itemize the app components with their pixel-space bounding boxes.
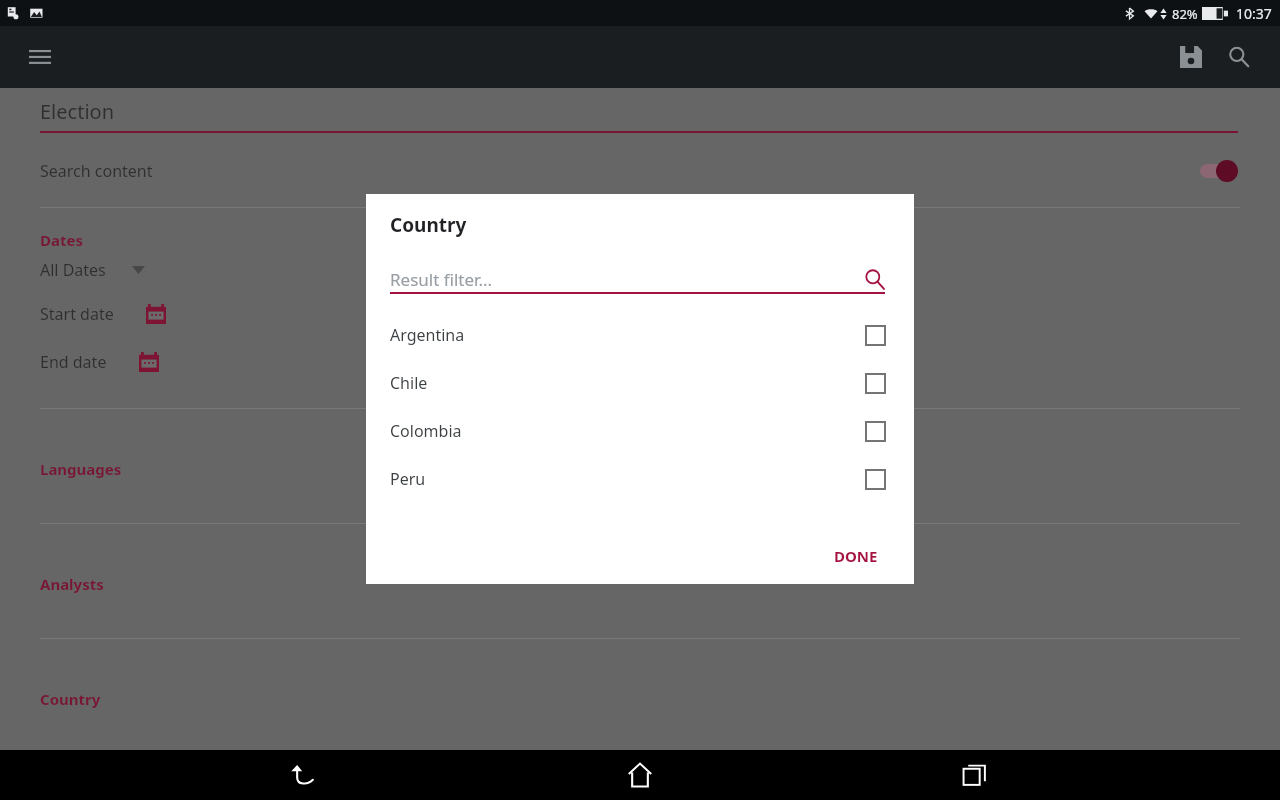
- staticText: Election: [40, 98, 114, 125]
- staticText: All Dates: [40, 259, 106, 281]
- button[interactable]: Save: [1168, 34, 1214, 80]
- button[interactable]: End date: [0, 338, 1280, 386]
- staticText: Start date: [40, 303, 114, 325]
- button[interactable]: Open navigation drawer: [18, 35, 62, 79]
- button[interactable]: Chile: [366, 359, 914, 407]
- staticText: Languages: [40, 459, 122, 479]
- button[interactable]: Home: [610, 750, 670, 800]
- button[interactable]: Back: [275, 750, 335, 800]
- button[interactable]: Argentina: [366, 311, 914, 359]
- staticText: Country: [390, 212, 467, 238]
- staticText: 82%: [1172, 5, 1198, 23]
- staticText: 10:37: [1236, 4, 1272, 23]
- staticText: Colombia: [390, 420, 866, 442]
- staticText: Peru: [390, 468, 866, 490]
- button[interactable]: Colombia: [366, 407, 914, 455]
- button[interactable]: DONE: [824, 538, 888, 574]
- button[interactable]: Search: [1216, 34, 1262, 80]
- staticText: Result filter...: [390, 268, 864, 291]
- staticText: Search content: [40, 160, 1192, 182]
- button[interactable]: All Dates: [0, 250, 1280, 290]
- staticText: Dates: [40, 230, 83, 250]
- button[interactable]: Result filter...: [390, 264, 885, 294]
- staticText: DONE: [834, 546, 878, 566]
- staticText: Argentina: [390, 324, 866, 346]
- staticText: Chile: [390, 372, 866, 394]
- staticText: Country: [40, 689, 101, 709]
- staticText: Analysts: [40, 574, 104, 594]
- button[interactable]: Search content: [0, 149, 1280, 193]
- button[interactable]: Start date: [0, 290, 1280, 338]
- button[interactable]: Recent apps: [945, 750, 1005, 800]
- staticText: End date: [40, 351, 107, 373]
- button[interactable]: Peru: [366, 455, 914, 503]
